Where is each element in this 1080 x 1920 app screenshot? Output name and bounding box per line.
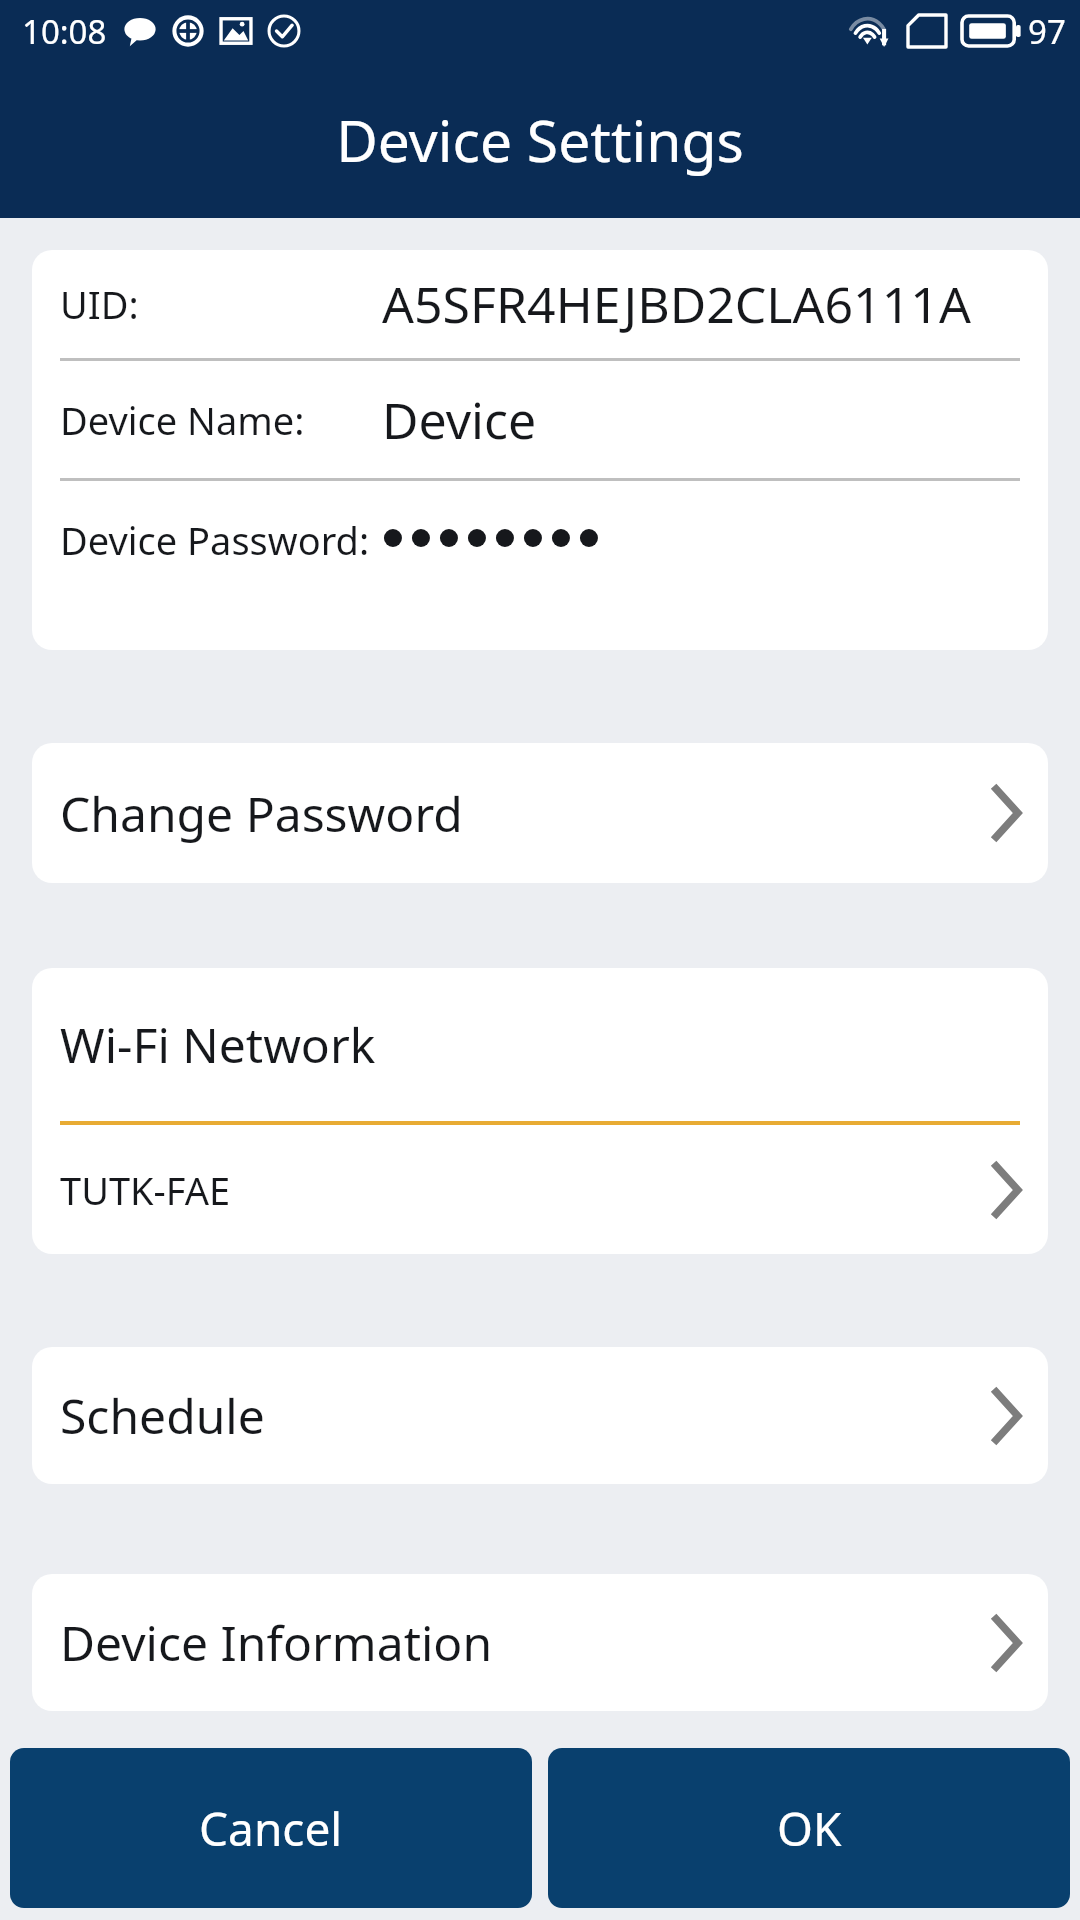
staticText: Change Password xyxy=(60,781,463,846)
button[interactable]: TUTK-FAE xyxy=(32,1125,1048,1254)
staticText: 10:08 xyxy=(22,9,107,54)
staticText: Device xyxy=(382,386,537,454)
staticText: Device Information xyxy=(60,1610,493,1675)
button[interactable]: Change Password xyxy=(32,743,1048,883)
staticText: 97 xyxy=(1028,9,1066,54)
button[interactable]: Device Information xyxy=(32,1574,1048,1711)
staticText: Device Password: xyxy=(60,514,370,566)
staticText: Device Settings xyxy=(336,101,744,179)
staticText: A5SFR4HEJBD2CLA6111A xyxy=(382,270,971,338)
staticText: OK xyxy=(777,1797,842,1860)
staticText: UID: xyxy=(60,278,139,330)
button[interactable]: OK xyxy=(548,1748,1070,1908)
staticText: Device Name: xyxy=(60,394,305,446)
staticText: Wi-Fi Network xyxy=(60,1012,376,1077)
staticText: Cancel xyxy=(199,1797,343,1860)
button[interactable]: Cancel xyxy=(10,1748,532,1908)
button[interactable]: Schedule xyxy=(32,1347,1048,1484)
staticText: Schedule xyxy=(60,1383,265,1448)
staticText: TUTK-FAE xyxy=(60,1164,231,1216)
